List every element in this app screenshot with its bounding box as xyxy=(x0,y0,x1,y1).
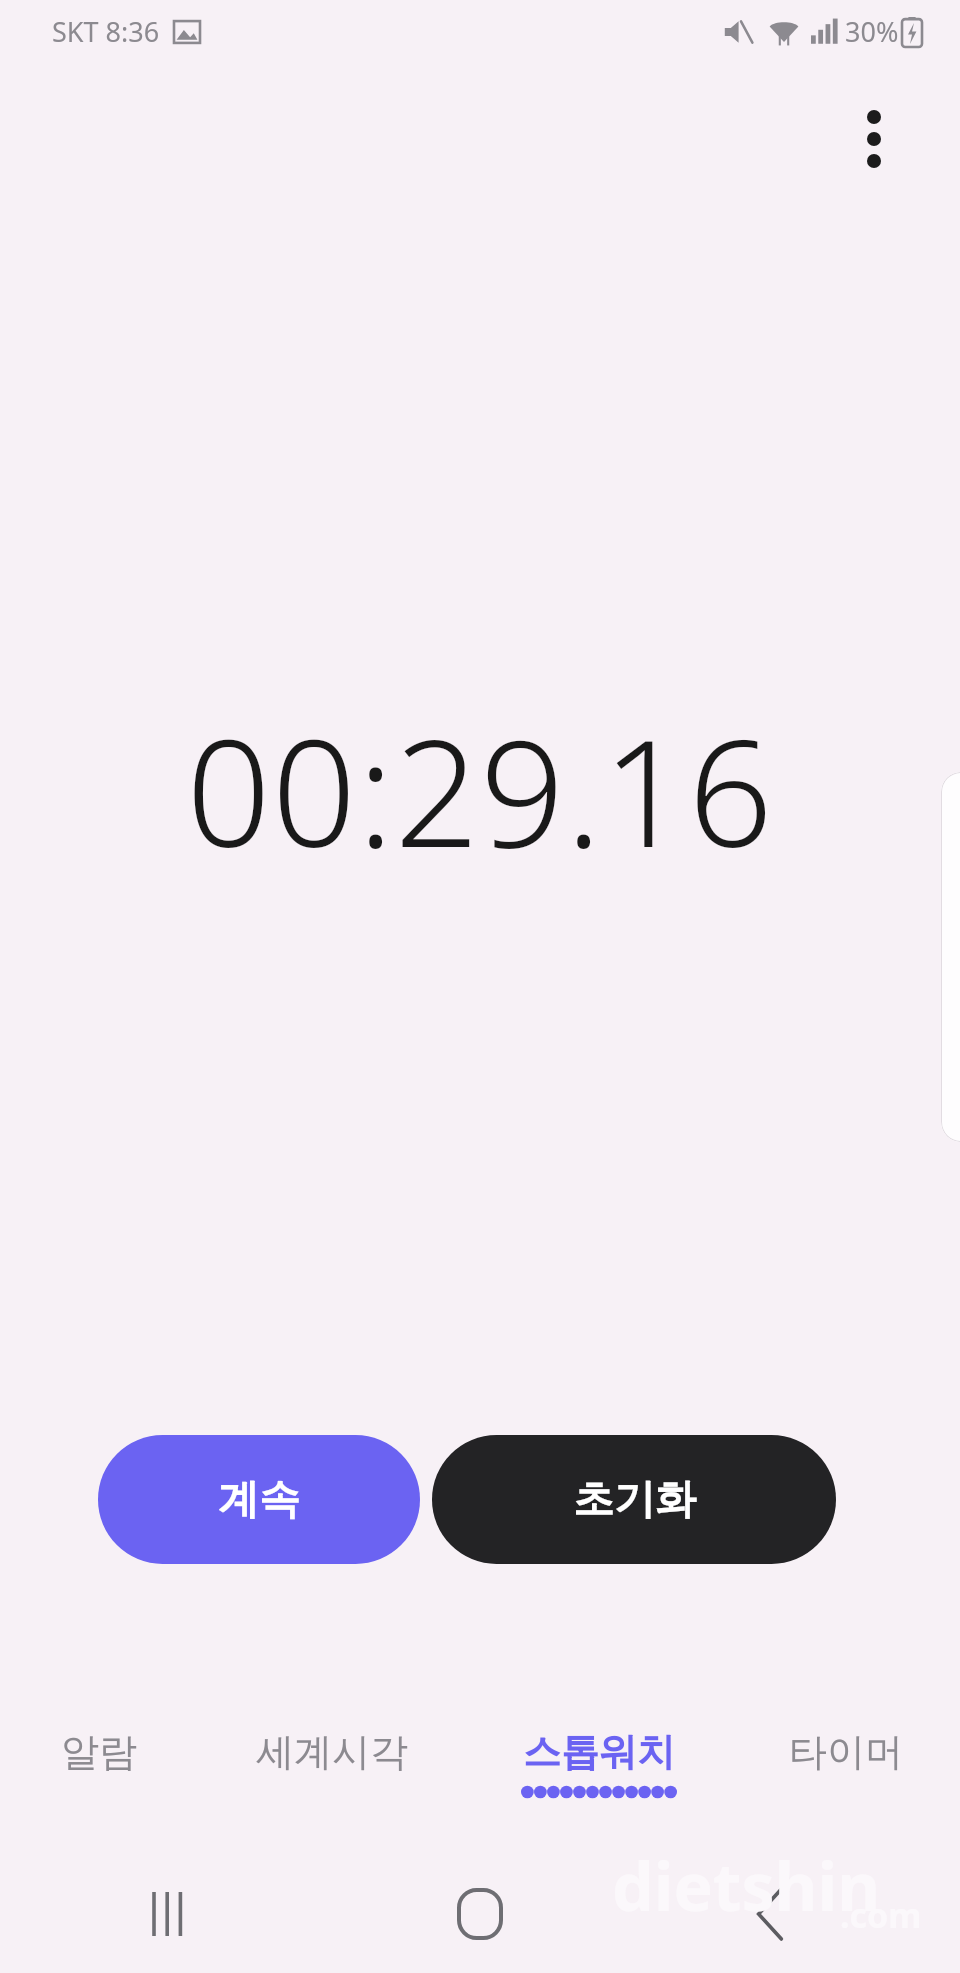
staticText: SKT 8:36 xyxy=(52,13,160,50)
staticText: 타이머 xyxy=(789,1728,903,1776)
staticText: 30% xyxy=(845,13,899,50)
staticText: .com xyxy=(840,1892,922,1938)
button[interactable]: 계속 xyxy=(98,1435,420,1564)
button[interactable]: 타이머 xyxy=(732,1728,960,1838)
staticText: dietshin xyxy=(612,1840,881,1930)
staticText: 초기화 xyxy=(573,1474,696,1526)
button[interactable]: 초기화 xyxy=(432,1435,836,1564)
button[interactable]: Recents xyxy=(100,1855,240,1973)
staticText: 계속 xyxy=(218,1474,300,1526)
button[interactable]: More options xyxy=(828,80,920,198)
staticText: 알람 xyxy=(61,1728,137,1776)
button[interactable]: Back xyxy=(700,1855,840,1973)
staticText: 스톱워치 xyxy=(523,1728,675,1776)
button[interactable]: 스톱워치 xyxy=(465,1728,732,1838)
staticText: 세계시각 xyxy=(256,1728,408,1776)
button[interactable]: Home xyxy=(410,1855,550,1973)
button[interactable]: 세계시각 xyxy=(198,1728,465,1838)
staticText: 00:29.16 xyxy=(186,689,774,891)
button[interactable]: 알람 xyxy=(0,1728,198,1838)
